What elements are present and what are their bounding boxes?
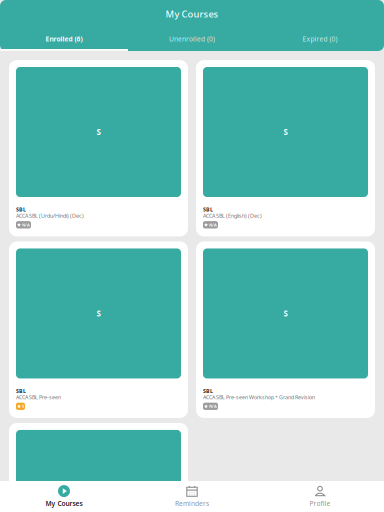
staticText: My Courses bbox=[165, 8, 218, 20]
staticText: My Courses bbox=[45, 499, 82, 508]
staticText: S bbox=[96, 308, 100, 319]
staticText: S bbox=[283, 308, 287, 319]
staticText: ACCA SBL (English) (Dec) bbox=[203, 212, 262, 219]
staticText: N/A bbox=[22, 222, 30, 227]
staticText: N/A bbox=[209, 404, 217, 409]
button[interactable]: S bbox=[9, 241, 188, 418]
staticText: S bbox=[96, 127, 100, 137]
staticText: N/A bbox=[209, 222, 217, 227]
staticText: Unenrolled (0) bbox=[169, 35, 215, 43]
staticText: Profile bbox=[309, 499, 330, 508]
staticText: ACCA SBL Pre-seen bbox=[16, 394, 61, 401]
staticText: S bbox=[283, 127, 287, 137]
staticText: Enrolled (6) bbox=[45, 35, 82, 43]
staticText: Reminders bbox=[175, 499, 209, 508]
button[interactable]: Profile bbox=[256, 481, 384, 512]
button[interactable]: Enrolled (6) bbox=[0, 32, 128, 46]
button[interactable]: S bbox=[196, 241, 375, 418]
staticText: SBL bbox=[203, 206, 213, 213]
button[interactable]: My Courses bbox=[0, 481, 128, 512]
staticText: ACCA SBL (Urdu/Hindi) (Dec) bbox=[16, 212, 84, 219]
staticText: SBL bbox=[203, 387, 213, 395]
button[interactable]: S bbox=[9, 60, 188, 236]
staticText: 5 bbox=[22, 404, 24, 409]
staticText: SBL bbox=[16, 206, 26, 213]
staticText: SBL bbox=[16, 387, 26, 395]
staticText: Expired (0) bbox=[302, 35, 337, 43]
button[interactable]: Reminders bbox=[128, 481, 256, 512]
button[interactable]: Unenrolled (0) bbox=[128, 32, 256, 46]
button[interactable]: Expired (0) bbox=[256, 32, 384, 46]
button[interactable]: S bbox=[9, 423, 188, 512]
button[interactable]: S bbox=[196, 60, 375, 236]
staticText: ACCA SBL Pre-seen Workshop + Grand Revis… bbox=[203, 394, 315, 401]
